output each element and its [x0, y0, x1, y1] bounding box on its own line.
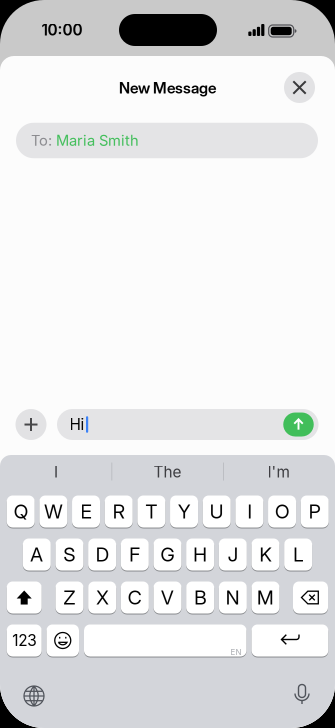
button[interactable]: K — [251, 538, 279, 570]
button[interactable]: M — [251, 581, 279, 613]
button[interactable]: C — [121, 581, 149, 613]
staticText: L — [293, 543, 303, 566]
staticText: R — [113, 500, 125, 523]
button[interactable]: Y — [170, 495, 198, 527]
staticText: V — [161, 586, 174, 609]
button[interactable]: Close — [284, 72, 315, 103]
button[interactable]: W — [39, 495, 67, 527]
button[interactable]: S — [55, 538, 83, 570]
staticText: E — [80, 500, 91, 523]
staticText: S — [63, 543, 75, 566]
staticText: I — [54, 463, 58, 481]
staticText: X — [96, 586, 108, 609]
button[interactable]: I — [6, 457, 106, 487]
staticText: Z — [63, 586, 75, 609]
staticText: Maria Smith — [56, 132, 139, 149]
button[interactable]: 123 — [7, 624, 42, 656]
button[interactable]: B — [186, 581, 214, 613]
staticText: I — [247, 500, 251, 523]
staticText: O — [275, 500, 289, 523]
staticText: Hi — [69, 415, 84, 434]
button[interactable]: Dictation — [291, 684, 313, 706]
staticText: D — [96, 543, 109, 566]
button[interactable]: Send — [283, 412, 314, 436]
button[interactable]: X — [88, 581, 116, 613]
staticText: U — [210, 500, 224, 523]
button[interactable]: To: Maria Smith — [16, 123, 318, 158]
button[interactable]: The — [117, 457, 217, 487]
staticText: F — [129, 543, 140, 566]
staticText: C — [128, 586, 142, 609]
button[interactable]: Q — [7, 495, 35, 527]
button[interactable]: I — [235, 495, 263, 527]
staticText: EN — [230, 647, 241, 657]
staticText: P — [309, 500, 321, 523]
staticText: To: — [31, 132, 52, 149]
button[interactable]: Emoji — [46, 624, 79, 656]
staticText: K — [259, 543, 271, 566]
button[interactable]: P — [301, 495, 329, 527]
button[interactable]: G — [153, 538, 181, 570]
button[interactable]: H — [186, 538, 214, 570]
button[interactable]: D — [88, 538, 116, 570]
button[interactable]: Next keyboard — [23, 685, 45, 707]
staticText: A — [30, 543, 43, 566]
staticText: N — [226, 586, 240, 609]
staticText: I'm — [267, 463, 289, 481]
staticText: T — [145, 500, 157, 523]
button[interactable]: O — [268, 495, 296, 527]
button[interactable]: Add attachment — [15, 409, 46, 440]
staticText: The — [153, 463, 181, 481]
button[interactable]: Shift — [7, 581, 42, 613]
button[interactable]: T — [137, 495, 165, 527]
button[interactable]: V — [153, 581, 181, 613]
staticText: M — [257, 586, 274, 609]
staticText: G — [160, 543, 174, 566]
button[interactable]: Delete — [293, 581, 328, 613]
staticText: New Message — [119, 79, 216, 97]
button[interactable]: I'm — [228, 457, 328, 487]
staticText: W — [44, 500, 62, 523]
button[interactable]: J — [219, 538, 247, 570]
staticText: 123 — [12, 631, 36, 650]
button[interactable]: E — [72, 495, 100, 527]
button[interactable]: F — [121, 538, 149, 570]
button[interactable]: R — [105, 495, 133, 527]
button[interactable]: Space — [84, 624, 246, 656]
button[interactable]: Message field — [57, 409, 318, 440]
button[interactable]: A — [23, 538, 51, 570]
button[interactable]: U — [203, 495, 231, 527]
staticText: J — [228, 543, 238, 566]
staticText: H — [193, 543, 207, 566]
button[interactable]: N — [219, 581, 247, 613]
staticText: 10:00 — [41, 21, 82, 39]
button[interactable]: Z — [55, 581, 83, 613]
button[interactable]: Return — [251, 624, 328, 656]
button[interactable]: L — [284, 538, 312, 570]
staticText: B — [194, 586, 206, 609]
staticText: Y — [178, 500, 190, 523]
staticText: Q — [14, 500, 28, 523]
